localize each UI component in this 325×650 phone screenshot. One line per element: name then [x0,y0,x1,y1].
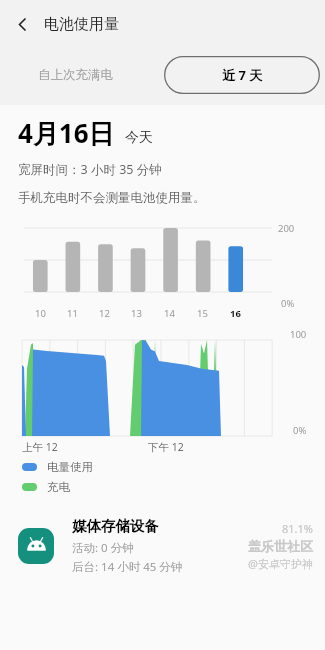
button[interactable]: 媒体存储设备 [0,508,325,584]
staticText: 10 [35,307,46,320]
staticText: 盖乐世社区 [248,538,313,554]
staticText: @安卓守护神 [248,556,313,571]
staticText: 充电 [47,480,70,494]
staticText: 自上次充满电 [38,67,113,83]
staticText: 活动: 0 分钟 [72,540,134,556]
staticText: 手机充电时不会测量电池使用量。 [18,190,206,206]
staticText: 12 [99,307,110,320]
staticText: 后台: 14 小时 45 分钟 [72,559,183,575]
staticText: 81.1% [282,521,313,536]
staticText: 0% [293,424,307,437]
staticText: 100 [290,328,307,341]
staticText: 媒体存储设备 [72,517,159,535]
staticText: 4月16日 [18,115,115,151]
staticText: 电量使用 [47,460,93,474]
staticText: 0% [281,297,295,310]
staticText: 宽屏时间：3 小时 35 分钟 [18,161,162,178]
staticText: 上午 12 [22,440,58,454]
staticText: 200 [278,222,295,235]
staticText: 15 [197,307,208,320]
staticText: 16 [230,307,241,320]
staticText: 下午 12 [148,440,184,454]
button[interactable]: Back [0,0,44,48]
staticText: 14 [164,307,175,320]
staticText: 近 7 天 [222,66,263,84]
staticText: 今天 [125,129,153,147]
staticText: 13 [131,307,142,320]
staticText: 11 [67,307,78,320]
staticText: 电池使用量 [44,15,119,34]
button[interactable]: 近 7 天 [164,56,320,94]
